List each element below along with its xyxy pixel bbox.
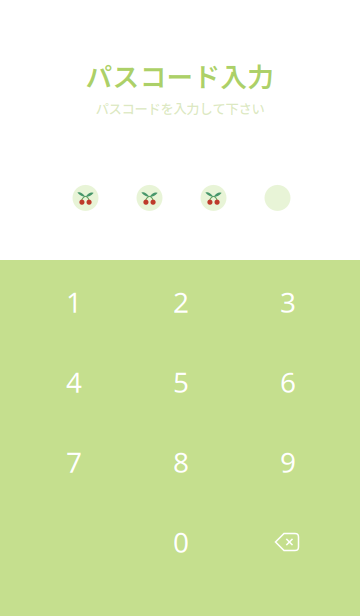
button[interactable]: 2: [127, 262, 234, 342]
staticText: パスコード入力: [85, 56, 274, 95]
staticText: 7: [66, 443, 82, 481]
button[interactable]: 8: [127, 422, 234, 502]
button[interactable]: Delete: [234, 502, 341, 582]
staticText: 4: [66, 363, 82, 401]
button[interactable]: 3: [234, 262, 341, 342]
button[interactable]: 6: [234, 342, 341, 422]
button[interactable]: 0: [127, 502, 234, 582]
staticText: 1: [66, 283, 82, 321]
staticText: 0: [173, 523, 189, 561]
button[interactable]: 5: [127, 342, 234, 422]
button[interactable]: 1: [20, 262, 127, 342]
button[interactable]: 4: [20, 342, 127, 422]
staticText: 3: [280, 283, 296, 321]
staticText: パスコードを入力して下さい: [95, 99, 264, 118]
staticText: 2: [173, 283, 189, 321]
button[interactable]: 7: [20, 422, 127, 502]
button[interactable]: 9: [234, 422, 341, 502]
staticText: 6: [280, 363, 296, 401]
staticText: 8: [173, 443, 189, 481]
staticText: 9: [280, 443, 296, 481]
staticText: 5: [173, 363, 189, 401]
